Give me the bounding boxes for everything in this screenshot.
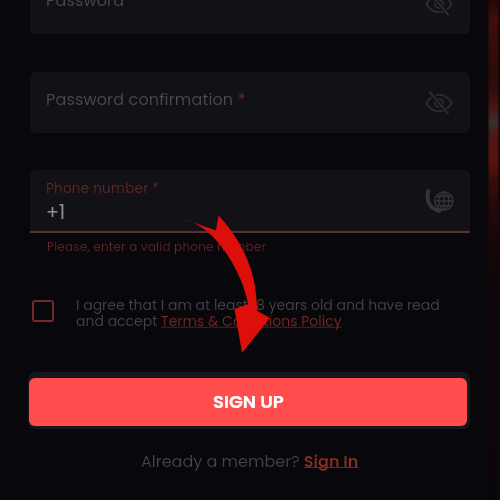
staticText: Please, enter a valid phone number xyxy=(47,238,267,255)
button[interactable]: Phone number * xyxy=(30,170,470,231)
button[interactable]: Toggle password visibility xyxy=(426,0,452,17)
staticText: +1 xyxy=(46,199,66,226)
button[interactable]: Select country code xyxy=(426,188,452,214)
button[interactable]: I agree that I am at least 18 years old … xyxy=(32,295,470,331)
button[interactable]: Already a member? Sign In xyxy=(141,450,359,472)
staticText: Phone number * xyxy=(46,179,160,198)
staticText: Password confirmation * xyxy=(46,88,246,110)
button[interactable]: Toggle password visibility xyxy=(426,90,452,116)
staticText: Password xyxy=(46,0,125,11)
staticText: I agree that I am at least 18 years old … xyxy=(76,295,470,331)
staticText: Already a member? Sign In xyxy=(141,450,359,472)
button[interactable]: Password xyxy=(30,0,470,34)
button[interactable]: Password confirmation * xyxy=(30,72,470,133)
button[interactable]: SIGN UP xyxy=(29,378,467,426)
staticText: SIGN UP xyxy=(213,389,284,414)
